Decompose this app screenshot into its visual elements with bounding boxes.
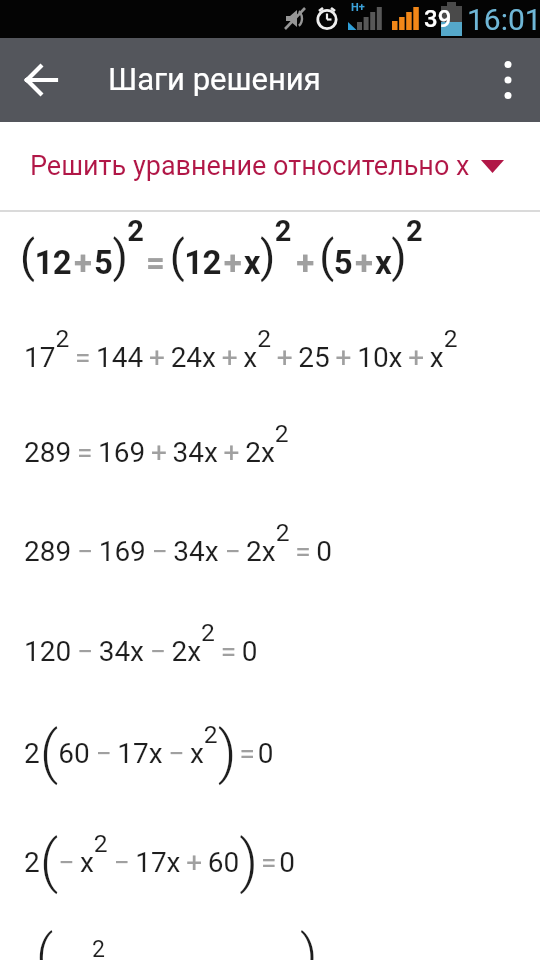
staticText: 172 = 144 + 24x + x2 + 25 + 10x + x2: [24, 324, 458, 374]
button[interactable]: [0, 38, 84, 122]
staticText: 2: [92, 936, 105, 960]
staticText: (: [36, 923, 54, 960]
button[interactable]: Решить уравнение относительно x: [0, 122, 540, 210]
staticText: H+: [351, 1, 365, 14]
staticText: Шаги решения: [108, 61, 321, 97]
staticText: 2(− x2 − 17x + 60) = 0: [24, 827, 296, 895]
staticText: 120 − 34x − 2x2 = 0: [24, 618, 258, 668]
staticText: 2(60 − 17x − x2) = 0: [24, 718, 274, 786]
staticText: 16:01: [467, 2, 540, 37]
button[interactable]: [476, 38, 540, 122]
staticText: 289 = 169 + 34x + 2x2: [24, 419, 289, 469]
staticText: Решить уравнение относительно x: [30, 150, 470, 182]
staticText: ): [300, 923, 318, 960]
staticText: (12 + 5)2 = (12 + x)2 + (5 + x)2: [20, 214, 423, 283]
staticText: 289 − 169 − 34x − 2x2 = 0: [24, 518, 333, 568]
staticText: 39: [424, 5, 452, 33]
